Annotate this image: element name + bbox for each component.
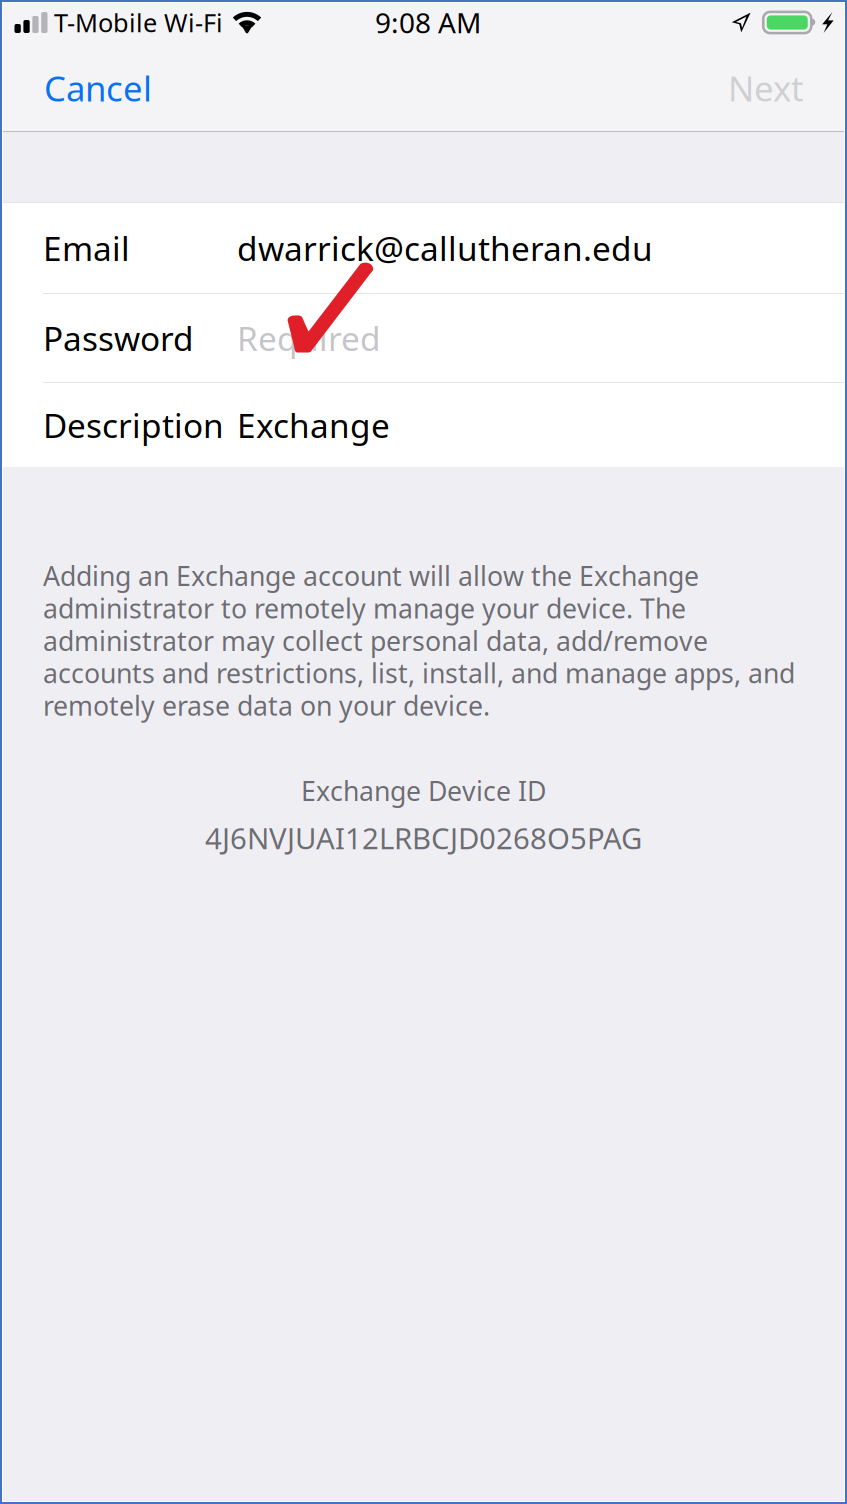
button[interactable]: Description bbox=[0, 383, 847, 467]
staticText: dwarrick@callutheran.edu bbox=[237, 226, 653, 270]
staticText: Next bbox=[728, 65, 804, 111]
button[interactable]: Next bbox=[720, 55, 812, 121]
staticText: Description bbox=[43, 403, 224, 447]
staticText: Cancel bbox=[44, 65, 152, 111]
staticText: T-Mobile Wi-Fi bbox=[54, 6, 223, 39]
staticText: Exchange Device ID bbox=[301, 773, 546, 808]
staticText: Adding an Exchange account will allow th… bbox=[43, 558, 795, 723]
button[interactable]: Password bbox=[0, 294, 847, 382]
button[interactable]: Email bbox=[0, 203, 847, 293]
staticText: Password bbox=[43, 316, 194, 360]
staticText: 9:08 AM bbox=[375, 4, 481, 41]
button[interactable]: Cancel bbox=[36, 55, 160, 121]
staticText: Exchange bbox=[237, 403, 390, 447]
staticText: 4J6NVJUAI12LRBCJD0268O5PAG bbox=[205, 818, 642, 857]
staticText: Email bbox=[43, 226, 130, 270]
staticText: Required bbox=[237, 316, 381, 360]
